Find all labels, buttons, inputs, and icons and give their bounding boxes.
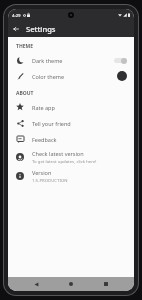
staticText: Version (32, 169, 52, 176)
button[interactable]: Rate app (8, 99, 134, 115)
staticText: To get latest updates, click here! (32, 158, 97, 164)
button[interactable]: Check latest version (8, 147, 134, 166)
staticText: Settings (26, 24, 56, 34)
staticText: Rate app (32, 104, 55, 111)
button[interactable]: Feedback (8, 131, 134, 147)
staticText: Feedback (32, 136, 57, 143)
staticText: Dark theme (32, 57, 63, 64)
staticText: Tell your friend (32, 120, 71, 127)
staticText: Color theme (32, 73, 64, 80)
staticText: Check latest version (32, 150, 84, 157)
button[interactable]: Recent apps (99, 277, 113, 291)
button[interactable]: Home (64, 277, 78, 291)
button[interactable]: Version (8, 166, 134, 185)
button[interactable]: Tell your friend (8, 115, 134, 131)
staticText: 4:29 (12, 12, 21, 18)
button[interactable]: Dark theme (8, 52, 134, 68)
button[interactable]: Color theme (8, 68, 134, 84)
staticText: ABOUT (16, 90, 34, 97)
button[interactable]: Back (29, 277, 43, 291)
staticText: 1.5-PRODUCTION (32, 177, 68, 183)
staticText: THEME (16, 43, 34, 50)
button[interactable]: Back (10, 23, 22, 35)
